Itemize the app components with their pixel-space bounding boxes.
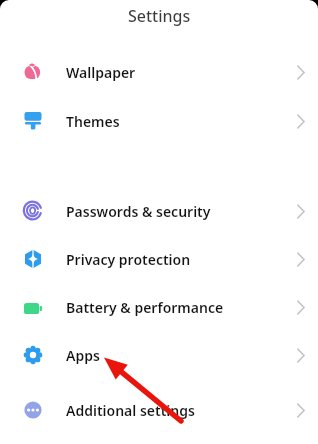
button[interactable]: Apps	[0, 331, 318, 379]
button[interactable]: Additional settings	[0, 386, 318, 434]
staticText: Themes	[66, 112, 120, 131]
button[interactable]: Themes	[0, 97, 318, 145]
button[interactable]: Battery & performance	[0, 283, 318, 331]
staticText: Passwords & security	[66, 202, 211, 221]
button[interactable]: Wallpaper	[0, 48, 318, 96]
staticText: Battery & performance	[66, 298, 224, 317]
staticText: Additional settings	[66, 401, 195, 420]
staticText: Apps	[66, 346, 100, 365]
staticText: Settings	[128, 5, 191, 27]
button[interactable]: Privacy protection	[0, 235, 318, 283]
staticText: Wallpaper	[66, 63, 136, 82]
staticText: Privacy protection	[66, 250, 191, 269]
button[interactable]: Passwords & security	[0, 187, 318, 235]
